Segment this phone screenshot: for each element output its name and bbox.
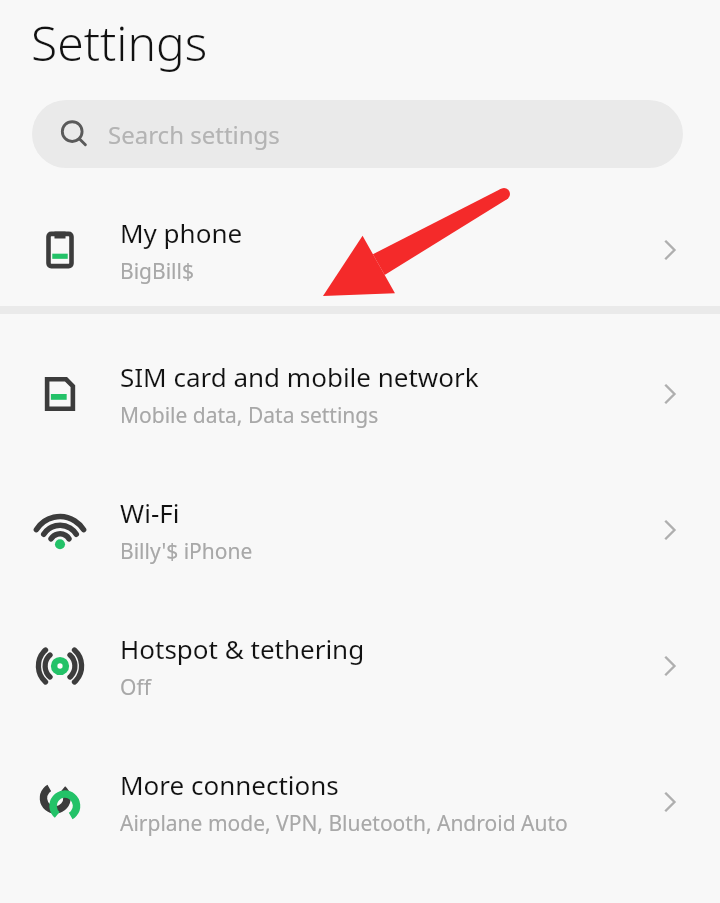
other: SIM card and mobile network <box>0 371 120 417</box>
staticText: Airplane mode, VPN, Bluetooth, Android A… <box>120 809 568 838</box>
staticText: Hotspot & tethering <box>120 631 365 666</box>
other: My phone <box>0 227 120 273</box>
button[interactable]: SIM card and mobile network <box>0 338 720 450</box>
staticText: More connections <box>120 767 339 802</box>
other: More connections <box>0 778 120 826</box>
staticText: Search settings <box>108 118 280 151</box>
button[interactable]: Hotspot and tethering <box>0 610 720 722</box>
other: Wi-Fi <box>0 506 120 554</box>
staticText: Off <box>120 673 151 702</box>
button[interactable]: More connections <box>0 746 720 858</box>
staticText: Settings <box>31 10 208 75</box>
staticText: My phone <box>120 215 243 250</box>
staticText: SIM card and mobile network <box>120 359 479 394</box>
button[interactable]: Search settings <box>32 100 683 168</box>
staticText: BigBill$ <box>120 257 194 286</box>
staticText: Mobile data, Data settings <box>120 401 379 430</box>
staticText: Wi-Fi <box>120 495 180 530</box>
staticText: Billy'$ iPhone <box>120 537 253 566</box>
button[interactable]: Wi-Fi <box>0 474 720 586</box>
button[interactable]: My phone <box>0 194 720 306</box>
other: Hotspot and tethering <box>0 642 120 690</box>
